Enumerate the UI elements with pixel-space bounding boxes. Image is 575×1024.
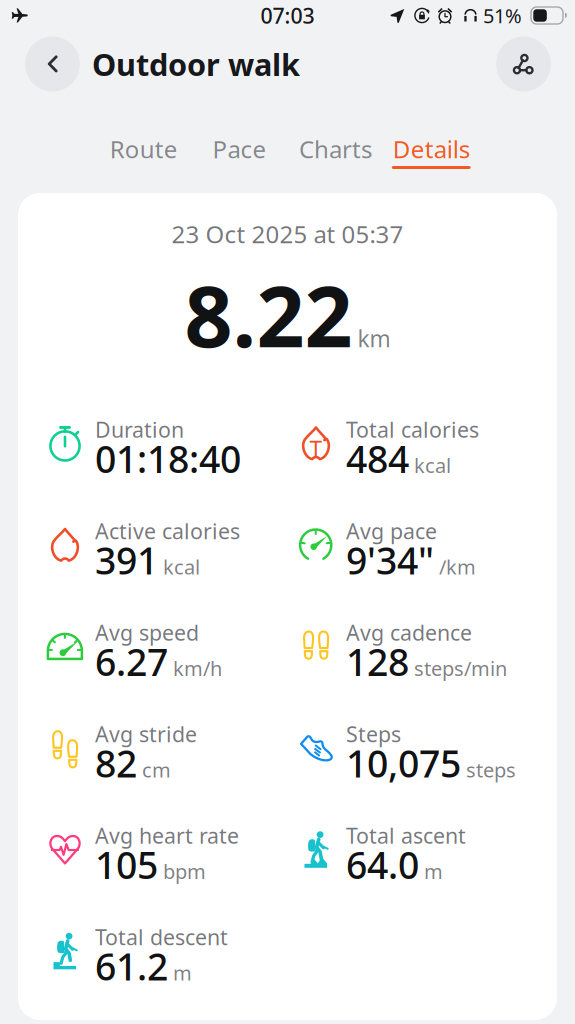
staticText: 484: [346, 434, 409, 483]
staticText: 61.2: [95, 941, 168, 991]
staticText: m: [173, 959, 192, 986]
staticText: Steps: [346, 720, 401, 748]
staticText: steps: [466, 756, 516, 783]
button[interactable]: Back: [25, 36, 80, 91]
staticText: 64.0: [346, 840, 419, 889]
staticText: km/h: [173, 655, 222, 682]
staticText: 07:03: [260, 1, 314, 30]
staticText: 8.22: [184, 259, 352, 370]
staticText: Duration: [95, 415, 184, 444]
staticText: km: [357, 323, 390, 353]
staticText: Total calories: [346, 415, 479, 444]
staticText: Charts: [299, 133, 372, 165]
staticText: 10,075: [346, 738, 461, 788]
staticText: Route: [110, 133, 178, 165]
staticText: 6.27: [95, 637, 168, 686]
button[interactable]: Route: [96, 97, 192, 193]
staticText: Total ascent: [346, 821, 466, 850]
staticText: 23 Oct 2025 at 05:37: [171, 218, 403, 250]
staticText: bpm: [163, 858, 206, 885]
staticText: Avg cadence: [346, 618, 472, 647]
staticText: 9'34": [346, 535, 434, 585]
staticText: 128: [346, 637, 409, 686]
staticText: m: [424, 858, 443, 885]
staticText: Avg heart rate: [95, 821, 239, 850]
staticText: 105: [95, 840, 158, 889]
staticText: cm: [142, 756, 171, 783]
staticText: T: [309, 434, 322, 464]
staticText: Avg speed: [95, 618, 199, 647]
staticText: 51%: [483, 2, 522, 29]
staticText: kcal: [414, 452, 451, 479]
staticText: 01:18:40: [95, 434, 241, 483]
staticText: Total descent: [95, 923, 228, 951]
staticText: Pace: [213, 133, 267, 165]
button[interactable]: Pace: [192, 97, 287, 193]
staticText: Active calories: [95, 517, 240, 545]
staticText: Outdoor walk: [92, 44, 300, 84]
staticText: /km: [439, 553, 476, 580]
staticText: Details: [393, 133, 470, 165]
staticText: Avg pace: [346, 517, 437, 545]
staticText: 391: [95, 535, 158, 585]
button[interactable]: Charts: [287, 97, 383, 193]
button[interactable]: Details: [383, 97, 479, 193]
staticText: 82: [95, 738, 137, 788]
button[interactable]: Share: [496, 36, 551, 91]
staticText: kcal: [163, 553, 200, 580]
staticText: Avg stride: [95, 720, 197, 748]
staticText: steps/min: [414, 655, 507, 682]
